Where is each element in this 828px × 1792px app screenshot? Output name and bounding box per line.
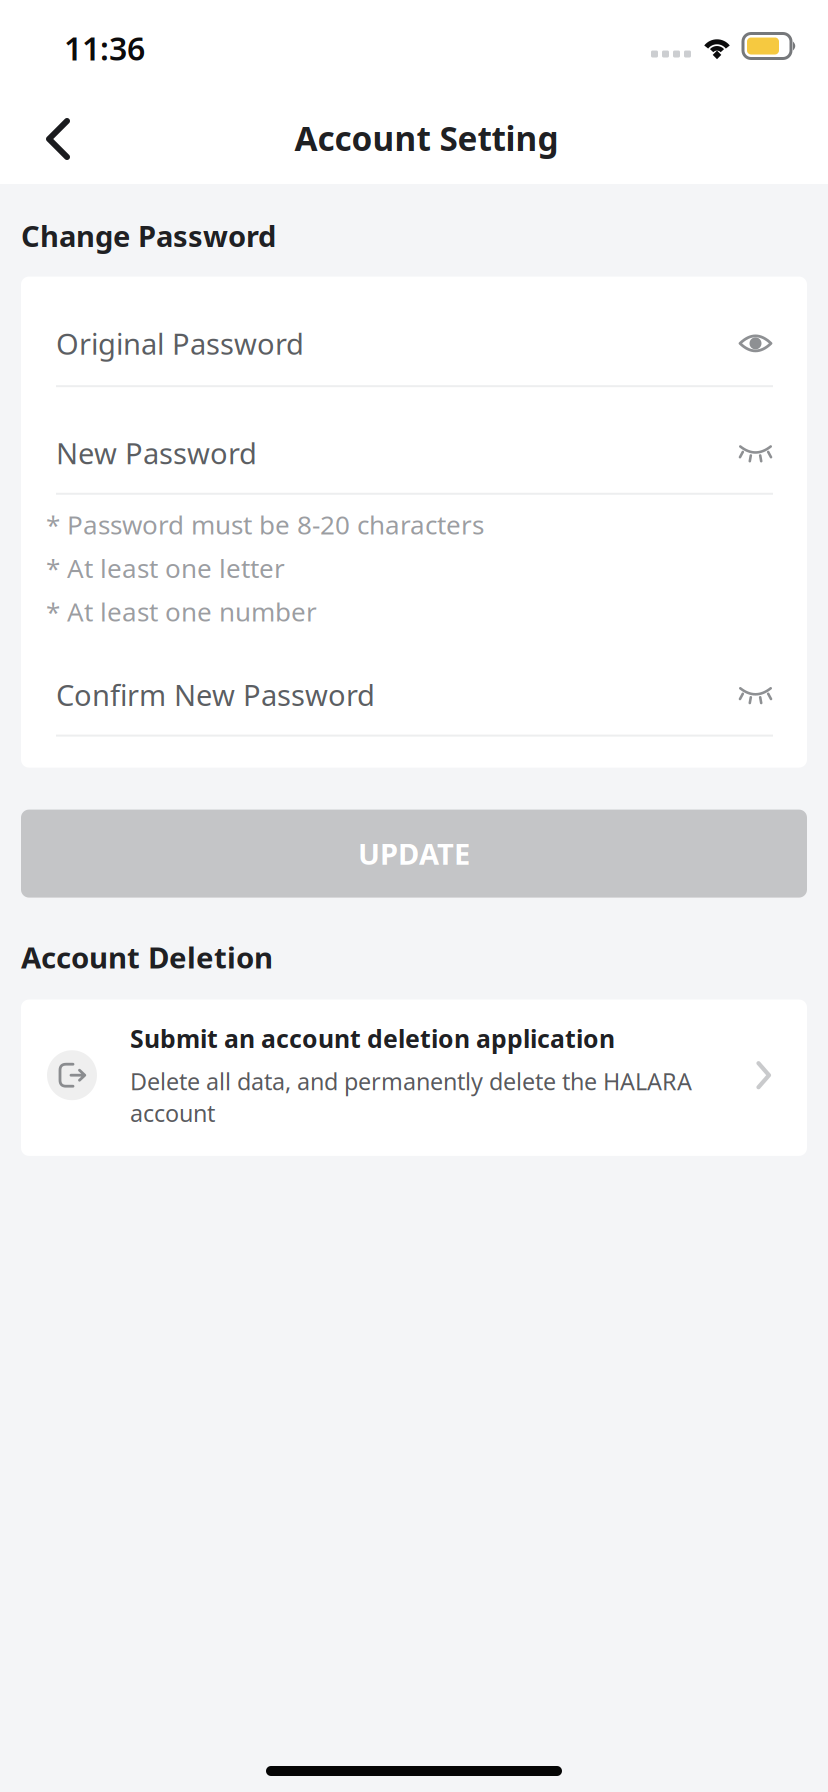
staticText: Confirm New Password [56, 675, 375, 715]
staticText: UPDATE [358, 834, 470, 873]
staticText: * Password must be 8-20 characters [46, 507, 484, 542]
button[interactable]: Show password [738, 437, 773, 469]
button[interactable]: Hide password [738, 327, 773, 359]
staticText: Change Password [21, 216, 276, 256]
staticText: Account Setting [294, 116, 558, 160]
staticText: * At least one number [46, 594, 317, 629]
staticText: Submit an account deletion application [130, 1021, 615, 1055]
button[interactable]: Show password [738, 679, 773, 711]
staticText: Original Password [56, 324, 304, 363]
button[interactable]: UPDATE [21, 810, 807, 898]
staticText: 11:36 [64, 27, 145, 69]
staticText: Delete all data, and permanently delete … [130, 1065, 692, 1129]
staticText: New Password [56, 433, 257, 473]
button[interactable]: Back [0, 109, 94, 167]
staticText: Account Deletion [21, 938, 273, 977]
button[interactable]: Submit an account deletion application [21, 999, 807, 1156]
staticText: * At least one letter [46, 550, 285, 586]
